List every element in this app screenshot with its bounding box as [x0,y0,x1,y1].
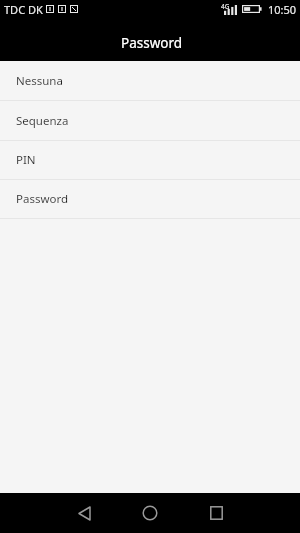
staticText: TDC DK [4,2,43,17]
staticText: 4G [221,2,230,11]
staticText: Password [16,191,69,207]
button[interactable]: PIN [0,141,300,179]
button[interactable]: Recent apps [192,493,240,533]
button[interactable]: Sequenza [0,101,300,140]
button[interactable]: Password [0,180,300,218]
staticText: 10:50 [268,2,297,17]
staticText: Nessuna [16,73,63,89]
staticText: Sequenza [16,113,69,129]
staticText: Password [121,34,183,52]
button[interactable]: Back [60,493,108,533]
button[interactable]: Home [126,493,174,533]
staticText: PIN [16,152,36,168]
button[interactable]: Nessuna [0,61,300,100]
